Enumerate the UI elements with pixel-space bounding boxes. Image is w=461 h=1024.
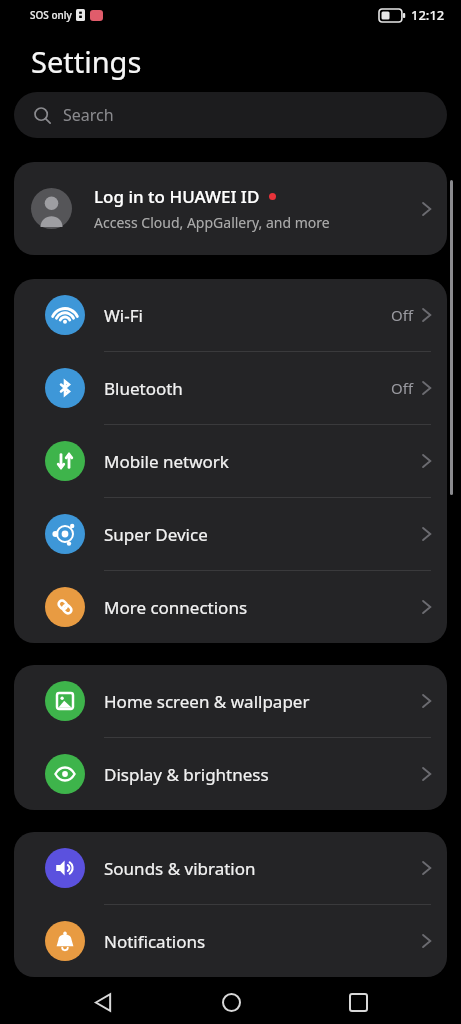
staticText: Off (391, 378, 414, 398)
staticText: 12:12 (411, 6, 445, 24)
staticText: Mobile network (104, 450, 229, 473)
button[interactable]: Back (79, 980, 127, 1024)
staticText: Search (63, 104, 114, 126)
button[interactable]: Display & brightness (14, 738, 447, 810)
button[interactable]: Super Device (14, 498, 447, 570)
staticText: Log in to HUAWEI ID (94, 185, 260, 208)
staticText: Notifications (104, 930, 206, 953)
staticText: Wi-Fi (104, 304, 143, 327)
button[interactable]: Home screen & wallpaper (14, 665, 447, 737)
button[interactable]: Recent apps (334, 980, 382, 1024)
button[interactable]: More connections (14, 571, 447, 643)
staticText: Access Cloud, AppGallery, and more (94, 213, 330, 232)
button[interactable]: Home (207, 980, 255, 1024)
button[interactable]: Search (14, 92, 447, 138)
button[interactable]: Mobile network (14, 425, 447, 497)
staticText: Bluetooth (104, 377, 183, 400)
staticText: Home screen & wallpaper (104, 690, 310, 713)
staticText: Sounds & vibration (104, 857, 256, 880)
staticText: Display & brightness (104, 763, 269, 786)
staticText: Settings (31, 42, 142, 81)
staticText: More connections (104, 596, 248, 619)
staticText: SOS only (30, 8, 72, 22)
button[interactable]: Wi-Fi (14, 279, 447, 351)
button[interactable]: Notifications (14, 905, 447, 977)
staticText: Off (391, 305, 414, 325)
button[interactable]: Log in to HUAWEI ID (14, 162, 447, 255)
button[interactable]: Sounds & vibration (14, 832, 447, 904)
staticText: Super Device (104, 523, 208, 546)
button[interactable]: Bluetooth (14, 352, 447, 424)
